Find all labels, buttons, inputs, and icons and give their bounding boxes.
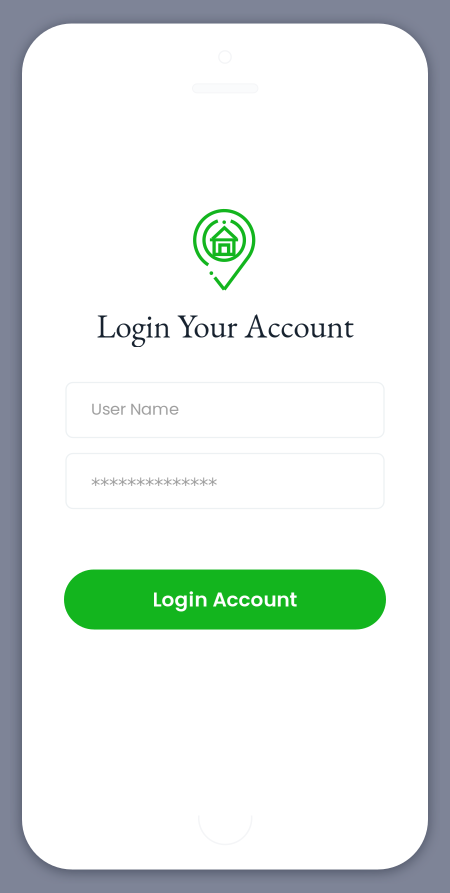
staticText: Login Account [152,585,297,613]
staticText: ************** [91,474,217,496]
staticText: User Name [91,398,179,420]
button[interactable]: User Name [66,382,384,437]
button[interactable]: ************** [66,453,384,508]
button[interactable]: Login Account [64,569,386,629]
staticText: Login Your Account [96,304,353,347]
